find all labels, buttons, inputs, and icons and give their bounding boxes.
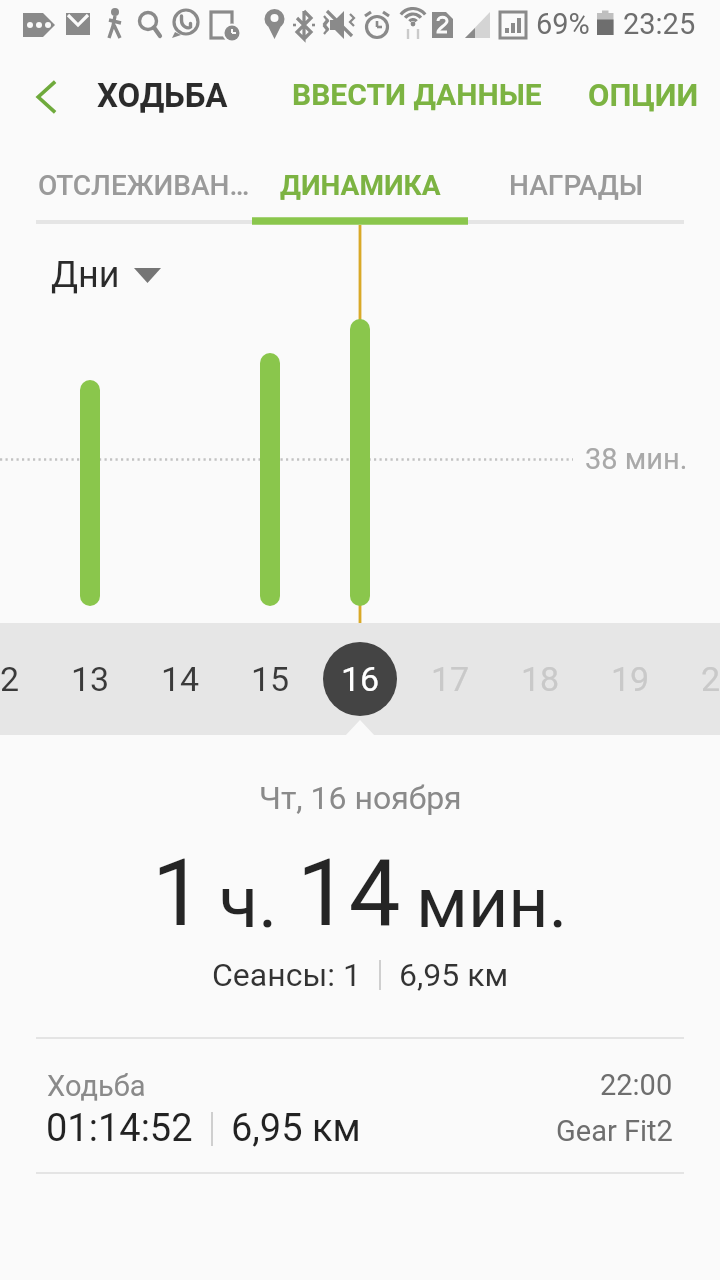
staticText: 19 [611,659,650,699]
staticText: НАГРАДЫ [509,169,644,202]
staticText: ОПЦИИ [588,77,699,113]
button[interactable]: ОПЦИИ [578,73,709,117]
staticText: 20 [701,659,720,699]
staticText: ДИНАМИКА [280,169,441,202]
staticText: 6,95 км [399,956,509,994]
staticText: ХОДЬБА [97,76,228,115]
staticText: 23:25 [623,7,696,41]
staticText: Ходьба [47,1069,146,1103]
button[interactable]: Ходьба [0,1037,720,1172]
staticText: Gear Fit2 [556,1114,673,1148]
button[interactable]: 19 [585,623,675,735]
staticText: 22:00 [600,1068,673,1102]
staticText: Чт, 16 ноября [259,779,462,817]
button[interactable]: НАГРАДЫ [468,150,684,220]
staticText: 17 [431,659,470,699]
button[interactable]: 16 [315,623,405,735]
staticText: 14 [297,840,401,948]
button[interactable]: ДИНАМИКА [252,150,468,220]
button[interactable]: ОТСЛЕЖИВАН… [36,150,252,220]
staticText: 15 [251,659,290,699]
staticText: 69% [536,7,590,41]
staticText: ч. [219,860,278,944]
staticText: 18 [521,659,560,699]
button[interactable]: 13 [45,623,135,735]
staticText: Дни [51,254,120,296]
button[interactable]: ВВЕСТИ ДАННЫЕ [282,73,552,116]
button[interactable]: 17 [405,623,495,735]
button[interactable]: 18 [495,623,585,735]
button[interactable]: 20 [675,623,720,735]
staticText: ОТСЛЕЖИВАН… [38,169,250,202]
staticText: 1 [152,840,204,948]
staticText: 01:14:52 [46,1106,193,1151]
staticText: Сеансы: 1 [212,956,361,994]
button[interactable]: Back [16,67,76,127]
staticText: 6,95 км [231,1106,361,1151]
staticText: 14 [161,659,200,699]
button[interactable]: 14 [135,623,225,735]
staticText: мин. [416,862,568,944]
staticText: 13 [71,659,110,699]
button[interactable]: Дни [43,248,169,302]
staticText: 38 мин. [585,442,688,476]
staticText: 16 [341,659,380,699]
button[interactable]: 15 [225,623,315,735]
button[interactable]: 12 [0,623,45,735]
staticText: ВВЕСТИ ДАННЫЕ [292,77,542,112]
staticText: 12 [0,659,20,699]
button[interactable]: ХОДЬБА [87,72,238,119]
